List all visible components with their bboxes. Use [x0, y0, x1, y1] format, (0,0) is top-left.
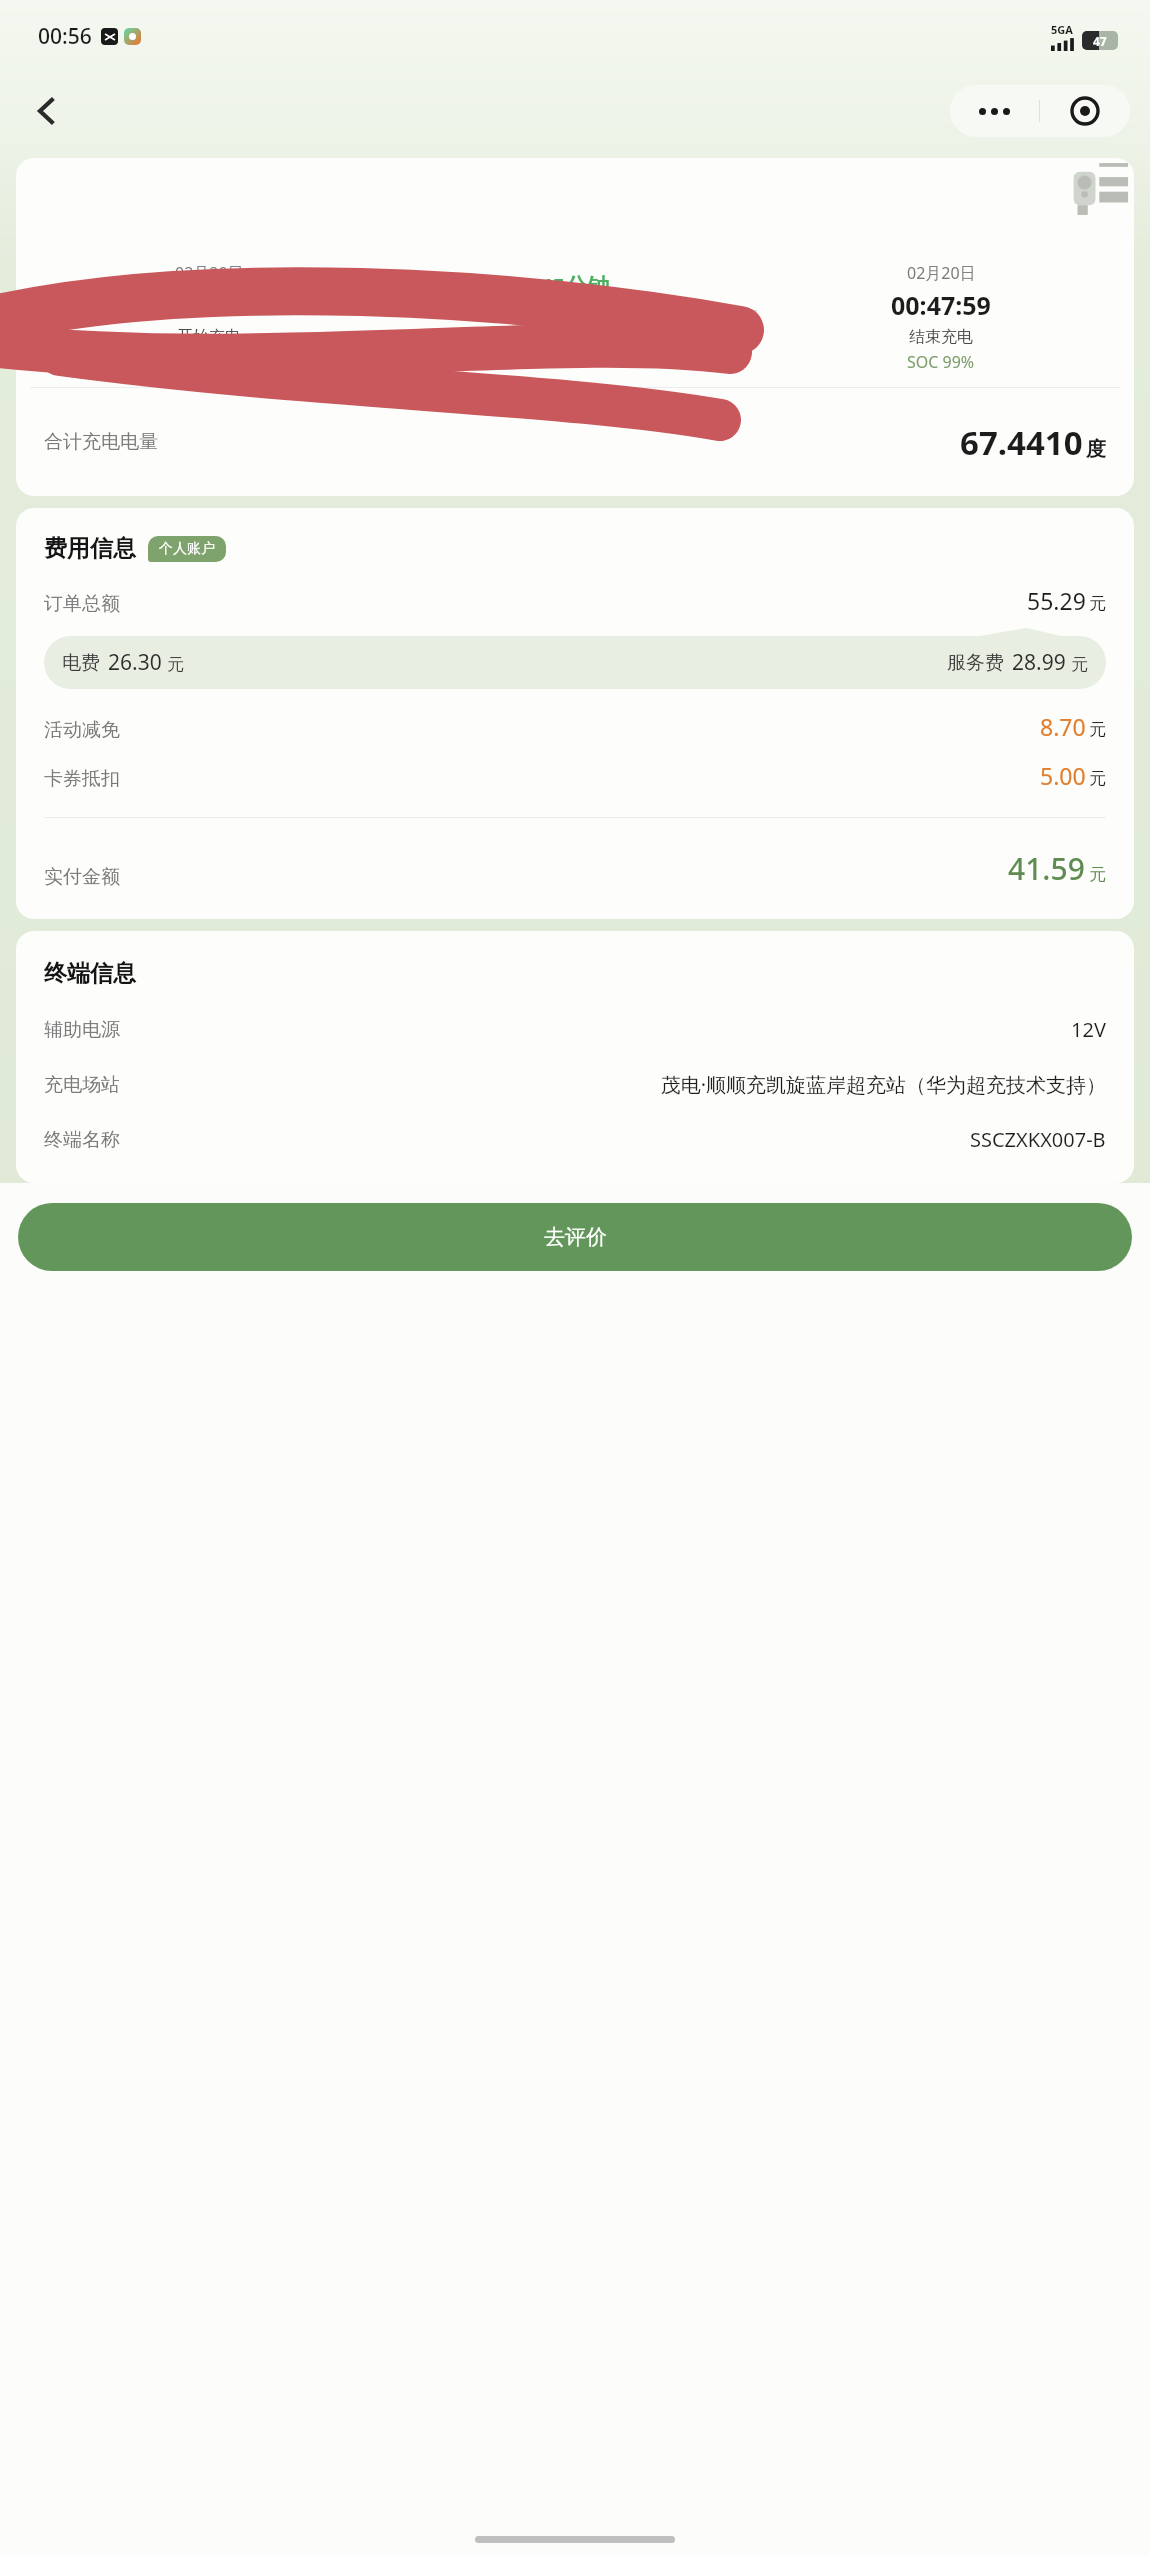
staticText: 实付金额: [44, 865, 120, 889]
staticText: 去评价: [544, 1224, 607, 1250]
staticText: 5GA: [1051, 22, 1073, 37]
staticText: 02月20日: [175, 262, 244, 284]
staticText: 费用信息: [44, 534, 136, 563]
staticText: 结束充电: [909, 327, 973, 347]
button[interactable]: 费用信息: [16, 508, 1134, 919]
staticText: 服务费: [947, 651, 1004, 675]
staticText: 终端信息: [44, 959, 136, 988]
button[interactable]: 去评价: [18, 1203, 1132, 1271]
staticText: 合计充电电量: [44, 430, 158, 454]
staticText: 元: [1089, 864, 1106, 885]
staticText: 00:56: [38, 22, 92, 51]
staticText: 元: [167, 654, 184, 675]
staticText: 26.30: [108, 648, 162, 677]
staticText: SSCZXKX007-B: [970, 1126, 1106, 1153]
staticText: 卡券抵扣: [44, 767, 120, 791]
staticText: 5.00: [1040, 760, 1086, 791]
staticText: 活动减免: [44, 718, 120, 742]
staticText: 辅助电源: [44, 1018, 120, 1042]
staticText: 02月20日: [907, 262, 976, 284]
staticText: 41.59: [1008, 848, 1085, 889]
staticText: 元: [1089, 719, 1106, 740]
button[interactable]: 02月20日: [16, 158, 1134, 496]
staticText: 55.29: [1027, 585, 1086, 616]
staticText: SOC 99%: [907, 351, 975, 373]
staticText: 00:01:39: [159, 288, 259, 322]
staticText: 茂电·顺顺充凯旋蓝岸超充站（华为超充技术支持）: [144, 1071, 1106, 1098]
staticText: 元: [1071, 654, 1088, 675]
staticText: 45分钟: [540, 270, 610, 300]
staticText: 元: [1089, 768, 1106, 789]
button[interactable]: Close: [1040, 85, 1130, 137]
staticText: 订单总额: [44, 592, 120, 616]
staticText: 终端名称: [44, 1128, 120, 1152]
staticText: 28.99: [1012, 648, 1066, 677]
staticText: 个人账户: [159, 540, 215, 558]
staticText: 67.4410: [960, 420, 1083, 465]
staticText: 充电场站: [44, 1073, 120, 1097]
staticText: 12V: [1071, 1016, 1106, 1043]
staticText: 47: [1093, 33, 1107, 49]
button[interactable]: More options: [950, 85, 1039, 137]
staticText: 电费: [62, 651, 100, 675]
staticText: 开始充电: [177, 327, 241, 347]
staticText: 8.70: [1040, 711, 1086, 742]
staticText: 元: [1089, 593, 1106, 614]
button[interactable]: Back: [20, 84, 74, 138]
staticText: 度: [1086, 437, 1106, 462]
button[interactable]: 终端信息: [16, 931, 1134, 1183]
staticText: 00:47:59: [891, 288, 991, 322]
